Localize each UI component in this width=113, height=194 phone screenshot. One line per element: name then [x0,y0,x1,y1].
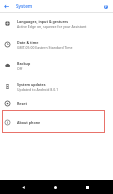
staticText: ? [105,5,107,9]
staticText: Updated to Android 8.0.1 [17,87,59,92]
button[interactable]: Recents [81,181,93,193]
staticText: Backup [17,61,31,66]
button[interactable]: Reset [0,97,113,110]
staticText: About phone [17,120,41,125]
button[interactable]: Date & time [0,34,113,55]
staticText: Active Edge on, squeeze for your Assista… [17,24,87,29]
button[interactable]: Back [1,1,12,12]
button[interactable]: System updates [0,76,113,97]
staticText: Off [17,66,23,71]
staticText: GMT-05:00 Eastern Standard Time [17,45,73,50]
button[interactable]: Back [17,181,29,193]
button[interactable]: Backup [0,55,113,76]
staticText: Date & time [17,40,39,45]
button[interactable]: Help [100,1,111,12]
staticText: Reset [17,101,28,106]
staticText: Languages, input & gestures [17,19,69,24]
staticText: System updates [17,82,46,87]
staticText: System [16,3,33,9]
button[interactable]: Languages, input & gestures [0,13,113,34]
button[interactable]: Home [49,181,61,193]
button[interactable]: About phone [0,110,113,134]
